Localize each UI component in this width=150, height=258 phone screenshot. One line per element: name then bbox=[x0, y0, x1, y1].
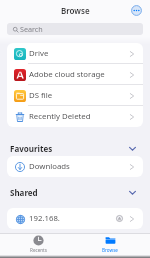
staticText: Drive bbox=[29, 48, 49, 59]
button[interactable]: Adobe cloud storage bbox=[7, 64, 143, 85]
staticText: Adobe cloud storage bbox=[29, 69, 105, 80]
button[interactable]: Eject bbox=[115, 214, 124, 223]
staticText: Recents bbox=[30, 247, 47, 253]
staticText: Shared bbox=[10, 187, 38, 198]
button[interactable]: Drive bbox=[7, 43, 143, 64]
button[interactable]: Collapse Shared bbox=[127, 187, 138, 198]
staticText: 192.168. bbox=[29, 213, 60, 224]
staticText: Browse bbox=[102, 247, 118, 253]
button[interactable]: Recently Deleted bbox=[7, 106, 143, 127]
button[interactable]: Recents bbox=[20, 234, 56, 253]
button[interactable]: 192.168. bbox=[7, 208, 143, 229]
button[interactable]: Search bbox=[7, 23, 143, 35]
button[interactable]: DS file bbox=[7, 85, 143, 106]
button[interactable]: Downloads bbox=[7, 156, 143, 177]
button[interactable]: Browse bbox=[92, 234, 128, 253]
staticText: Recently Deleted bbox=[29, 111, 91, 122]
staticText: DS file bbox=[29, 90, 53, 101]
staticText: Search bbox=[20, 24, 43, 34]
button[interactable]: More bbox=[129, 3, 143, 17]
staticText: Downloads bbox=[29, 161, 70, 172]
staticText: Favourites bbox=[10, 143, 53, 154]
staticText: Browse bbox=[61, 5, 90, 16]
button[interactable]: Collapse Favourites bbox=[127, 143, 138, 154]
